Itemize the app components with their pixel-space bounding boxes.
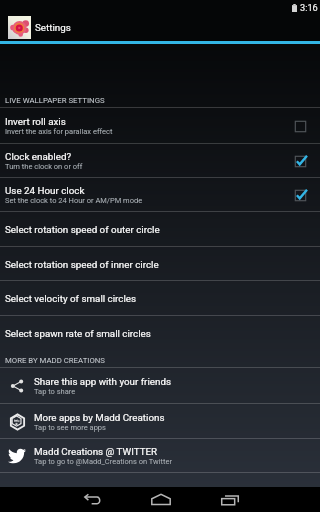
staticText: Clock enabled? [5,151,72,162]
staticText: Invert roll axis [5,116,66,127]
staticText: 3:16 [300,2,318,13]
staticText: Select velocity of small circles [5,293,137,304]
button[interactable]: Select rotation speed of inner circle [0,247,320,281]
staticText: More apps by Madd Creations [34,412,165,423]
button[interactable]: Select velocity of small circles [0,281,320,316]
staticText: Turn the clock on or off [5,162,83,171]
staticText: Select rotation speed of inner circle [5,259,159,270]
staticText: Use 24 Hour clock [5,185,85,196]
staticText: Settings [35,22,71,33]
button[interactable]: More apps by Madd Creations [0,404,320,439]
staticText: Tap to go to @Madd_Creations on Twitter [34,457,172,466]
button[interactable]: Clock enabled? [0,144,320,178]
button[interactable]: Invert roll axis [0,108,320,144]
button[interactable]: Home [126,487,195,512]
button[interactable]: Share this app with your friends [0,368,320,404]
staticText: Share this app with your friends [34,376,171,387]
staticText: Set the clock to 24 Hour or AM/PM mode [5,196,143,205]
staticText: Tap to share [34,387,76,396]
staticText: Select spawn rate of small circles [5,328,151,339]
staticText: Select rotation speed of outer circle [5,224,160,235]
staticText: MORE BY MADD CREATIONS [5,356,105,365]
staticText: Madd Creations @ TWITTER [34,446,158,457]
staticText: LIVE WALLPAPER SETTINGS [5,96,105,105]
staticText: Tap to see more apps [34,423,106,432]
button[interactable]: Select spawn rate of small circles [0,316,320,351]
button[interactable]: Select rotation speed of outer circle [0,212,320,247]
staticText: Invert the axis for parallax effect [5,127,113,136]
button[interactable]: Back [57,487,126,512]
button[interactable]: Recent apps [195,487,264,512]
button[interactable]: Madd Creations @ TWITTER [0,439,320,473]
button[interactable]: Use 24 Hour clock [0,178,320,212]
